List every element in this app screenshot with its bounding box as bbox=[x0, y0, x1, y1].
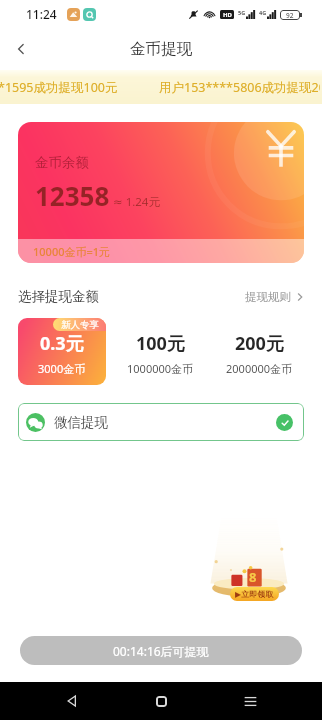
staticText: 92 bbox=[286, 11, 294, 20]
button[interactable]: 提现规则 bbox=[245, 290, 304, 304]
staticText: 5G bbox=[238, 9, 246, 16]
staticText: HD bbox=[223, 11, 232, 19]
staticText: 用户153****5806成功提现200 bbox=[159, 79, 320, 96]
button[interactable]: 00:14:16后可提现 bbox=[20, 636, 302, 665]
staticText: 金币提现 bbox=[130, 39, 192, 59]
staticText: 提现规则 bbox=[245, 290, 291, 304]
button[interactable]: 100元 bbox=[116, 318, 205, 385]
staticText: 2000000金币 bbox=[226, 361, 293, 376]
button[interactable]: Back bbox=[6, 34, 36, 64]
staticText: 12358 bbox=[35, 178, 110, 213]
staticText: 选择提现金额 bbox=[18, 288, 99, 305]
staticText: 4G bbox=[259, 9, 267, 16]
staticText: 200元 bbox=[235, 331, 284, 356]
staticText: 100元 bbox=[136, 331, 185, 356]
button[interactable]: Back bbox=[55, 684, 89, 718]
staticText: 3000金币 bbox=[38, 361, 86, 376]
button[interactable]: Recent apps bbox=[233, 684, 267, 718]
button[interactable]: 200元 bbox=[215, 318, 304, 385]
staticText: 10000金币=1元 bbox=[33, 244, 111, 259]
button[interactable]: 立即领取 bbox=[208, 518, 290, 602]
staticText: ≈ 1.24元 bbox=[113, 194, 160, 210]
staticText: 金币余额 bbox=[35, 154, 89, 171]
staticText: 8 bbox=[249, 568, 257, 586]
staticText: 00:14:16后可提现 bbox=[113, 643, 209, 659]
staticText: 1000000金币 bbox=[127, 361, 194, 376]
button[interactable]: 0.3元 bbox=[18, 318, 106, 385]
button[interactable]: 微信提现 bbox=[18, 403, 304, 441]
staticText: ▶立即领取 bbox=[235, 589, 274, 599]
staticText: 11:24 bbox=[26, 6, 57, 22]
staticText: 微信提现 bbox=[54, 414, 108, 431]
staticText: 0.3元 bbox=[40, 331, 84, 356]
staticText: *1595成功提现100元 bbox=[0, 79, 118, 96]
staticText: 新人专享 bbox=[61, 319, 99, 331]
button[interactable]: Home bbox=[144, 684, 178, 718]
